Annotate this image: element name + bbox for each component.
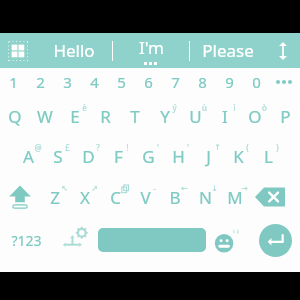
staticText: ' (187, 142, 189, 153)
button[interactable]: U (180, 96, 210, 136)
button[interactable]: 2 (27, 68, 54, 96)
staticText: ? (96, 142, 100, 153)
button[interactable]: Y (150, 96, 180, 136)
button[interactable]: L (253, 136, 283, 176)
staticText: 4 (90, 72, 99, 92)
staticText: è (82, 102, 87, 113)
staticText: A (23, 145, 34, 168)
staticText: R (100, 105, 111, 128)
staticText: ý (172, 102, 177, 113)
staticText: 2 (36, 72, 45, 92)
button[interactable]: Enter (250, 218, 300, 262)
staticText: N (199, 186, 212, 209)
button[interactable]: 8 (189, 68, 216, 96)
staticText: S (53, 145, 63, 168)
button[interactable]: O (240, 96, 270, 136)
button[interactable]: W (30, 96, 60, 136)
button[interactable]: ?123 (0, 218, 52, 262)
button[interactable]: H (163, 136, 193, 176)
staticText: ↖ (61, 184, 68, 193)
staticText: 9 (225, 72, 234, 92)
staticText: L (264, 145, 273, 168)
button[interactable]: F (103, 136, 133, 176)
button[interactable]: I (210, 96, 240, 136)
staticText: G (142, 145, 155, 168)
staticText: H (172, 145, 185, 168)
button[interactable]: S (43, 136, 73, 176)
staticText: Y (160, 105, 170, 128)
button[interactable]: V (130, 176, 160, 218)
button[interactable]: R (90, 96, 120, 136)
button[interactable]: 6 (135, 68, 162, 96)
staticText: C (110, 186, 121, 209)
button[interactable]: Hello (36, 33, 112, 68)
button[interactable]: 5 (108, 68, 135, 96)
staticText: 5 (117, 72, 126, 92)
staticText: 0 (252, 72, 261, 92)
button[interactable]: Keyboard themes (0, 33, 36, 68)
staticText: 7 (171, 72, 180, 92)
button[interactable]: Emoji (206, 218, 250, 262)
staticText: ) (276, 142, 279, 153)
staticText: Q (8, 105, 22, 128)
button[interactable]: 1 (0, 68, 27, 96)
button[interactable]: Resize keyboard (266, 33, 300, 68)
staticText: ?123 (11, 231, 42, 250)
button[interactable]: B (160, 176, 190, 218)
staticText: Z (50, 186, 60, 209)
button[interactable]: Q (0, 96, 30, 136)
button[interactable]: K (223, 136, 253, 176)
staticText: M (227, 186, 243, 209)
staticText: U (189, 105, 202, 128)
staticText: ' (157, 142, 159, 153)
button[interactable]: E (60, 96, 90, 136)
staticText: O (248, 105, 262, 128)
button[interactable]: 3 (54, 68, 81, 96)
staticText: F (114, 145, 123, 168)
staticText: → (241, 184, 248, 193)
button[interactable]: P (270, 96, 300, 136)
button[interactable]: 9 (216, 68, 243, 96)
button[interactable]: A (13, 136, 43, 176)
button[interactable]: M (220, 176, 250, 218)
button[interactable]: Shift (0, 176, 40, 218)
button[interactable]: D (73, 136, 103, 176)
button[interactable]: G (133, 136, 163, 176)
staticText: I'm (139, 36, 164, 59)
button[interactable]: Please (190, 33, 266, 68)
button[interactable]: Backspace (250, 176, 290, 218)
staticText: K (233, 145, 244, 168)
staticText: W (37, 105, 53, 128)
button[interactable]: J (193, 136, 223, 176)
staticText: £ (65, 142, 70, 153)
button[interactable]: 7 (162, 68, 189, 96)
staticText: @ (34, 142, 42, 153)
button[interactable]: T (120, 96, 150, 136)
button[interactable]: 4 (81, 68, 108, 96)
button[interactable]: Space (98, 228, 206, 252)
staticText: Please (202, 39, 254, 62)
button[interactable]: C (100, 176, 130, 218)
button[interactable]: I'm (113, 33, 189, 68)
staticText: Hello (53, 39, 95, 62)
staticText: T (130, 105, 140, 128)
staticText: ì (233, 102, 236, 113)
staticText: ( (246, 142, 249, 153)
staticText: D (82, 145, 95, 168)
staticText: V (140, 186, 151, 209)
staticText: P (280, 105, 291, 128)
button[interactable]: Cursor control and settings (52, 218, 98, 262)
staticText: I (222, 105, 228, 128)
staticText: - (153, 183, 156, 194)
button[interactable]: Z (40, 176, 70, 218)
button[interactable]: N (190, 176, 220, 218)
staticText: ! (126, 142, 129, 153)
button[interactable]: X (70, 176, 100, 218)
staticText: J (206, 145, 211, 168)
staticText: B (169, 186, 181, 209)
staticText: E (70, 105, 80, 128)
staticText: ← (181, 184, 188, 193)
button[interactable]: 0 (243, 68, 270, 96)
staticText: 3 (63, 72, 72, 92)
button[interactable]: More symbols (270, 68, 300, 96)
